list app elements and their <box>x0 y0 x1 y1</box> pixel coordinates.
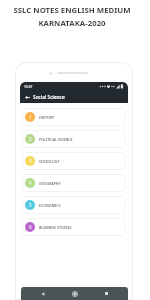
button[interactable]: 4 <box>22 174 125 192</box>
button[interactable]: 5 <box>22 196 125 214</box>
staticText: SOCIOLOGY <box>39 159 60 164</box>
button[interactable]: 1 <box>22 108 125 126</box>
button[interactable]: 6 <box>22 218 125 236</box>
staticText: POLITICAL SCIENCE <box>39 137 73 142</box>
button[interactable]: 2 <box>22 130 125 148</box>
staticText: 4 <box>29 180 32 186</box>
staticText: 6 <box>29 224 32 230</box>
button[interactable]: Back <box>34 287 52 300</box>
button[interactable]: Recent apps <box>97 287 115 300</box>
staticText: 10:57 <box>24 84 33 88</box>
staticText: 5 <box>29 202 32 208</box>
staticText: ECONOMICS <box>39 203 61 208</box>
staticText: SSLC NOTES ENGLISH MEDIUM <box>13 5 131 16</box>
staticText: 3 <box>29 158 32 164</box>
staticText: 1 <box>29 114 32 120</box>
staticText: Social Science <box>33 94 65 101</box>
staticText: KARNATAKA-2020 <box>38 18 106 29</box>
button[interactable]: Home <box>66 287 84 300</box>
button[interactable]: 3 <box>22 152 125 170</box>
staticText: GEOGRAPHY <box>39 181 61 186</box>
staticText: BUSINESS STUDIES <box>39 225 72 230</box>
button[interactable]: Back <box>22 92 32 102</box>
staticText: 2 <box>29 136 32 142</box>
staticText: HISTORY <box>39 115 55 120</box>
